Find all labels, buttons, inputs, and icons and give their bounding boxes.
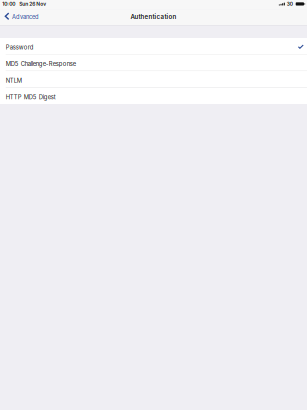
button[interactable]: HTTP MD5 Digest	[0, 88, 307, 104]
staticText: Password	[6, 44, 34, 51]
button[interactable]: Advanced	[0, 9, 43, 25]
staticText: HTTP MD5 Digest	[6, 94, 56, 101]
staticText: Advanced	[12, 13, 39, 20]
button[interactable]: Password	[0, 38, 307, 54]
staticText: MD5 Challenge-Response	[6, 60, 76, 67]
staticText: Sun 26 Nov	[19, 1, 46, 7]
staticText: 30	[287, 1, 293, 7]
staticText: Authentication	[130, 13, 176, 20]
button[interactable]: MD5 Challenge-Response	[0, 55, 307, 71]
button[interactable]: NTLM	[0, 71, 307, 87]
staticText: NTLM	[6, 77, 22, 84]
staticText: 10:00	[2, 1, 15, 7]
